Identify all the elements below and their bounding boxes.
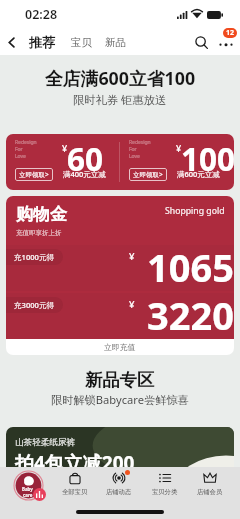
button[interactable]: Babycare store home: [14, 471, 43, 500]
button[interactable]: 宝贝: [71, 36, 92, 49]
staticText: Baby: [22, 486, 33, 492]
staticText: 满400元立减: [63, 169, 106, 179]
button[interactable]: 立即领取>: [15, 168, 53, 181]
button[interactable]: 店铺会员: [188, 467, 232, 500]
staticText: 新品专区: [85, 369, 155, 391]
button[interactable]: Search: [191, 32, 211, 52]
staticText: 立即领取>: [19, 170, 49, 179]
staticText: 02:28: [25, 6, 58, 23]
staticText: Love: [129, 153, 140, 160]
button[interactable]: 宝贝分类: [141, 467, 188, 500]
staticText: 3220: [147, 289, 234, 335]
staticText: ¥: [129, 250, 135, 263]
staticText: 立即领取>: [133, 170, 163, 179]
staticText: Redesign: [129, 139, 151, 146]
staticText: For: [129, 146, 137, 153]
staticText: 推荐: [29, 34, 55, 50]
button[interactable]: More options: [215, 31, 237, 53]
staticText: 充1000元得: [14, 252, 55, 262]
staticText: 充值即享折上折: [16, 229, 62, 237]
staticText: 12: [226, 28, 235, 38]
staticText: ¥: [62, 142, 68, 154]
button[interactable]: 山茶轻柔纸尿裤: [6, 427, 234, 495]
button[interactable]: 店铺动态: [97, 467, 141, 500]
button[interactable]: 立即充值: [104, 342, 136, 352]
button[interactable]: 全部宝贝: [53, 467, 97, 500]
staticText: 拍4包立减200: [15, 450, 135, 476]
staticText: 限时礼券 钜惠放送: [73, 92, 167, 107]
staticText: 店铺会员: [197, 488, 223, 496]
staticText: 店铺动态: [106, 488, 132, 496]
staticText: Redesign: [15, 139, 37, 146]
staticText: 立即充值: [104, 342, 136, 352]
staticText: ¥: [129, 298, 135, 311]
staticText: 宝贝: [71, 36, 92, 49]
staticText: 全部宝贝: [62, 488, 88, 496]
staticText: Shopping gold: [165, 205, 225, 217]
staticText: 购物金: [16, 204, 67, 225]
staticText: 新品: [105, 36, 126, 49]
staticText: 1065: [147, 241, 234, 287]
staticText: 全店满600立省100: [45, 66, 196, 90]
staticText: 100: [181, 137, 234, 180]
staticText: care: [23, 492, 33, 498]
button[interactable]: Back: [0, 31, 22, 53]
button[interactable]: 立即领取>: [129, 168, 167, 181]
button[interactable]: 新品: [105, 36, 126, 49]
button[interactable]: 推荐: [29, 34, 55, 50]
staticText: For: [15, 146, 23, 153]
staticText: 限时解锁Babycare尝鲜惊喜: [51, 392, 189, 407]
staticText: 宝贝分类: [152, 488, 178, 496]
staticText: Love: [15, 153, 26, 160]
staticText: ¥: [176, 142, 182, 154]
staticText: 满600元立减: [177, 169, 220, 179]
staticText: 山茶轻柔纸尿裤: [15, 437, 76, 448]
staticText: 充3000元得: [14, 300, 55, 310]
staticText: 60: [67, 137, 104, 180]
